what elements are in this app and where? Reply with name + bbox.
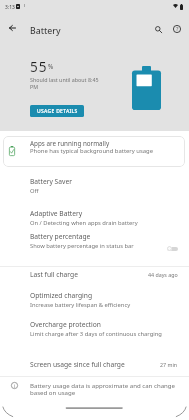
button[interactable]: USAGE DETAILS — [30, 105, 84, 117]
staticText: i — [14, 383, 16, 389]
staticText: Increase battery lifespan & efficiency — [30, 301, 131, 309]
staticText: On / Detecting when apps drain battery — [30, 219, 138, 227]
button[interactable]: Optimized charging — [0, 289, 189, 312]
button[interactable]: Last full charge — [0, 268, 189, 282]
button[interactable]: Help — [168, 20, 186, 38]
button[interactable]: Adaptive Battery — [0, 207, 189, 230]
staticText: Show battery percentage in status bar — [30, 242, 134, 250]
staticText: 3:13 — [5, 4, 15, 11]
button[interactable]: Battery percentage — [0, 230, 189, 252]
staticText: 44 days ago — [148, 271, 178, 278]
staticText: USAGE DETAILS — [37, 108, 78, 115]
staticText: Last full charge — [30, 270, 148, 279]
staticText: 55 — [30, 57, 48, 76]
staticText: Adaptive Battery — [30, 209, 83, 218]
staticText: Phone has typical background battery usa… — [30, 147, 154, 155]
staticText: Limit charge after 3 days of continuous … — [30, 330, 162, 338]
staticText: 27 min — [160, 361, 178, 368]
button[interactable]: Battery Saver — [0, 175, 189, 198]
staticText: Battery percentage — [30, 232, 91, 241]
staticText: Battery Saver — [30, 177, 72, 186]
staticText: Battery usage data is approximate and ca… — [30, 381, 178, 397]
button[interactable]: Apps are running normally — [3, 136, 185, 167]
button[interactable]: Search — [149, 20, 167, 38]
staticText: Overcharge protection — [30, 320, 101, 329]
staticText: ? — [176, 25, 179, 33]
staticText: Battery — [30, 25, 61, 37]
staticText: Optimized charging — [30, 291, 93, 300]
staticText: Off — [30, 187, 39, 195]
button[interactable]: Back — [3, 19, 21, 37]
button[interactable]: Screen usage since full charge — [0, 358, 189, 372]
staticText: % — [48, 62, 54, 70]
button[interactable]: Overcharge protection — [0, 318, 189, 341]
staticText: Should last until about 8:45 PM — [30, 76, 104, 90]
staticText: Apps are running normally — [30, 139, 110, 148]
staticText: Screen usage since full charge — [30, 360, 160, 369]
